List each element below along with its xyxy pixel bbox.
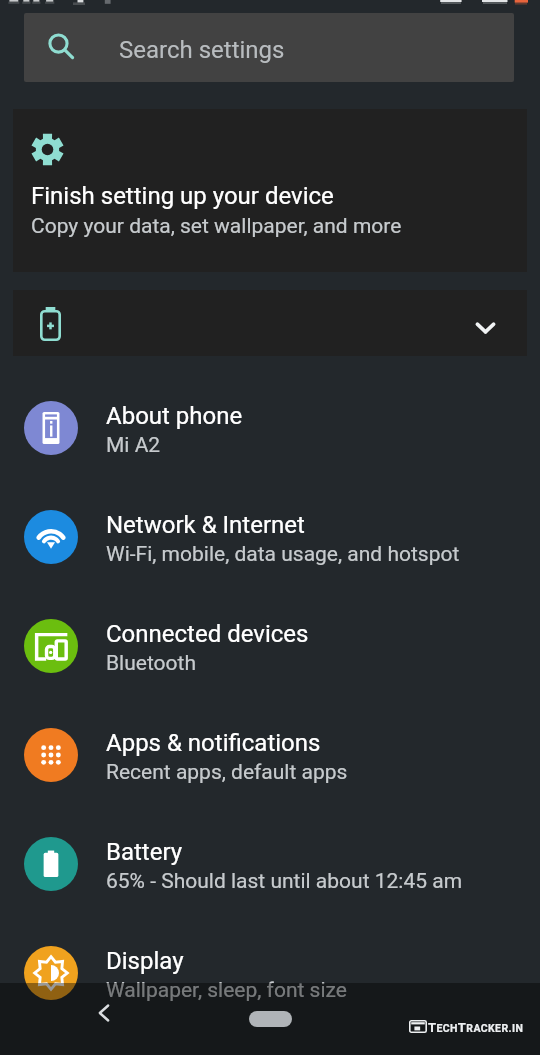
button[interactable]: Connected devices [0,591,540,700]
button[interactable]: Apps & notifications [0,700,540,809]
button[interactable]: Battery [0,809,540,918]
staticText: Display [106,947,184,975]
other: Expand [476,322,495,334]
button[interactable]: Home [249,1011,292,1027]
button[interactable]: Expand [13,290,527,356]
staticText: 65% - Should last until about 12:45 am [106,869,463,894]
button[interactable]: About phone [0,373,540,482]
staticText: Search settings [119,36,285,64]
staticText: Battery [106,838,183,866]
staticText: Bluetooth [106,651,196,676]
staticText: Network & Internet [106,511,305,539]
staticText: Finish setting up your device [31,182,334,210]
button[interactable]: Back [80,989,128,1037]
button[interactable]: Display [0,918,540,1027]
staticText: Wi-Fi, mobile, data usage, and hotspot [106,542,460,567]
staticText: Recent apps, default apps [106,760,348,785]
staticText: Wallpaper, sleep, font size [106,978,347,1003]
staticText: TECHTRACKER.IN [428,1020,524,1035]
staticText: Apps & notifications [106,729,321,757]
button[interactable]: Search [24,13,514,82]
staticText: Connected devices [106,620,309,648]
staticText: Copy your data, set wallpaper, and more [31,214,402,239]
staticText: About phone [106,402,243,430]
button[interactable]: Network & Internet [0,482,540,591]
staticText: Mi A2 [106,433,161,458]
button[interactable]: Finish setting up your device [13,109,527,272]
other: Search [46,32,78,64]
